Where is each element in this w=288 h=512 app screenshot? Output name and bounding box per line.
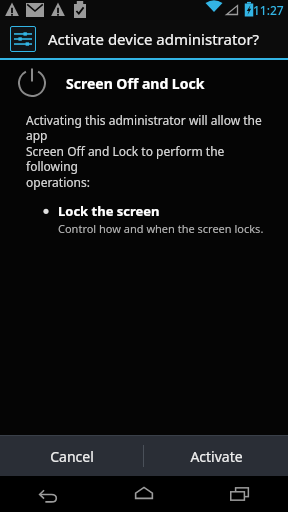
staticText: Activate — [190, 447, 243, 466]
staticText: Activate device administrator? — [48, 29, 260, 49]
staticText: Activating this administrator will allow… — [26, 112, 270, 143]
other: Device administrator icon — [10, 26, 36, 52]
staticText: operations: — [26, 174, 90, 190]
button[interactable]: Home — [96, 476, 192, 512]
staticText: Screen Off and Lock to perform the follo… — [26, 143, 270, 174]
button[interactable]: Activate — [144, 436, 288, 476]
staticText: Control how and when the screen locks. — [58, 221, 264, 236]
button[interactable]: Cancel — [0, 436, 143, 476]
button[interactable]: Recent apps — [192, 476, 288, 512]
staticText: Screen Off and Lock — [66, 74, 205, 93]
button[interactable]: Back — [0, 476, 96, 512]
staticText: 11:27 — [253, 2, 284, 18]
staticText: Lock the screen — [58, 202, 160, 220]
staticText: Cancel — [50, 447, 94, 466]
